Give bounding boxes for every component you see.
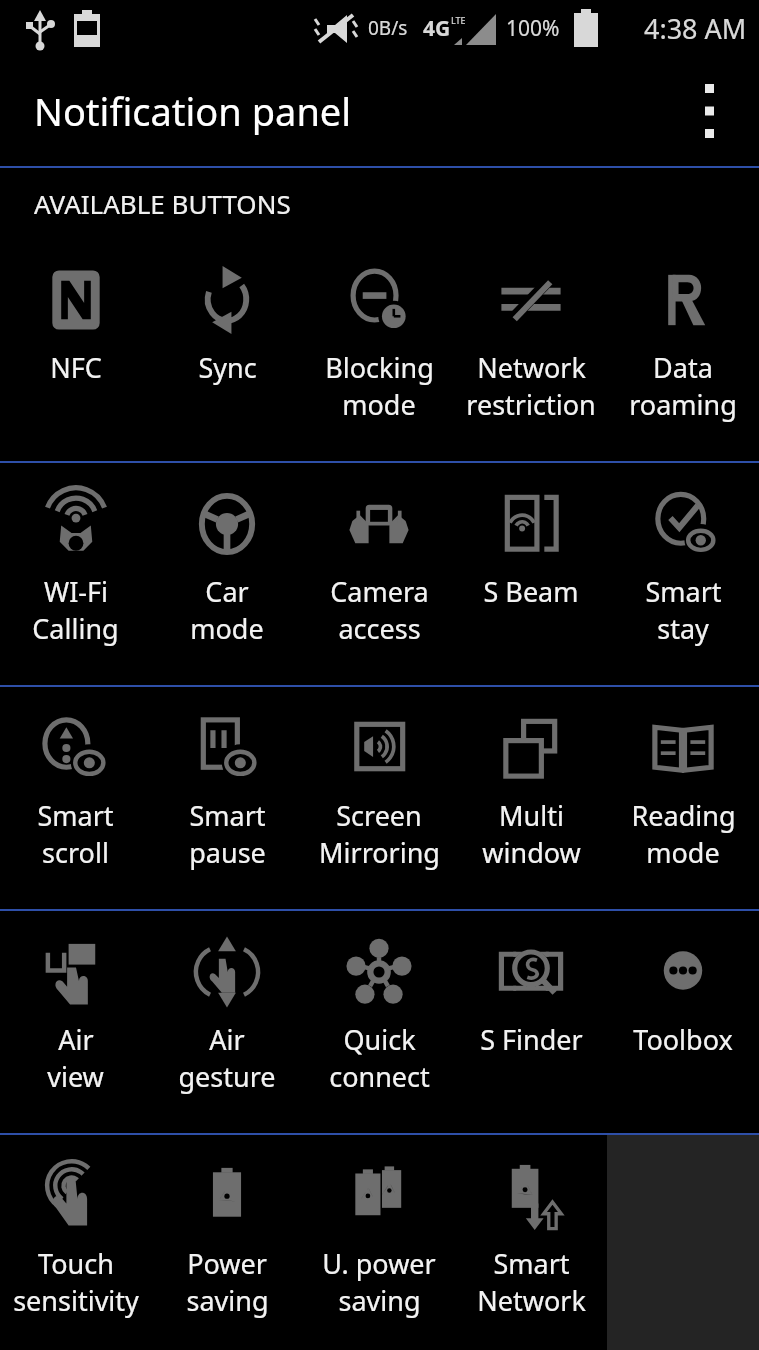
staticText: window bbox=[482, 834, 581, 871]
staticText: Air bbox=[209, 1021, 245, 1058]
staticText: Touch bbox=[38, 1245, 114, 1282]
button[interactable]: Camera bbox=[303, 463, 455, 685]
staticText: Power bbox=[187, 1245, 267, 1282]
staticText: mode bbox=[342, 386, 416, 423]
button[interactable]: Sync bbox=[151, 239, 303, 461]
button[interactable]: Multi bbox=[455, 687, 607, 909]
staticText: scroll bbox=[42, 834, 109, 871]
staticText: mode bbox=[190, 610, 264, 647]
staticText: U. power bbox=[322, 1245, 436, 1282]
button[interactable]: Reading bbox=[607, 687, 759, 909]
button[interactable]: Car bbox=[151, 463, 303, 685]
staticText: 100% bbox=[506, 14, 560, 43]
staticText: Smart bbox=[37, 797, 114, 834]
staticText: Toolbox bbox=[633, 1021, 733, 1058]
staticText: Camera bbox=[330, 573, 429, 610]
button[interactable]: S Finder bbox=[455, 911, 607, 1133]
button[interactable]: More options bbox=[679, 81, 739, 141]
staticText: pause bbox=[189, 834, 266, 871]
staticText: view bbox=[47, 1058, 104, 1095]
staticText: 0B/s bbox=[368, 15, 408, 41]
staticText: 4G bbox=[423, 14, 451, 43]
staticText: Sync bbox=[198, 349, 257, 386]
button[interactable]: Screen bbox=[303, 687, 455, 909]
staticText: Screen bbox=[336, 797, 422, 834]
staticText: S Beam bbox=[483, 573, 579, 610]
staticText: restriction bbox=[466, 386, 596, 423]
button[interactable]: Smart bbox=[607, 463, 759, 685]
button[interactable]: Smart bbox=[455, 1135, 607, 1350]
button[interactable]: Touch bbox=[0, 1135, 151, 1350]
staticText: Quick bbox=[343, 1021, 416, 1058]
staticText: WI-Fi bbox=[44, 573, 108, 610]
button[interactable]: WI-Fi bbox=[0, 463, 151, 685]
staticText: LTE bbox=[451, 14, 466, 26]
staticText: mode bbox=[646, 834, 720, 871]
button[interactable]: Air bbox=[151, 911, 303, 1133]
staticText: Network bbox=[477, 1282, 586, 1319]
staticText: roaming bbox=[629, 386, 737, 423]
staticText: stay bbox=[657, 610, 709, 647]
staticText: Smart bbox=[493, 1245, 570, 1282]
staticText: Notification panel bbox=[34, 85, 352, 137]
staticText: saving bbox=[186, 1282, 269, 1319]
button[interactable]: Power bbox=[151, 1135, 303, 1350]
staticText: Mirroring bbox=[319, 834, 440, 871]
button[interactable]: Smart bbox=[151, 687, 303, 909]
staticText: Calling bbox=[32, 610, 119, 647]
button[interactable]: Data bbox=[607, 239, 759, 461]
staticText: Car bbox=[205, 573, 249, 610]
button[interactable]: Toolbox bbox=[607, 911, 759, 1133]
staticText: access bbox=[338, 610, 421, 647]
button[interactable]: S Beam bbox=[455, 463, 607, 685]
button[interactable]: Network bbox=[455, 239, 607, 461]
staticText: Reading bbox=[631, 797, 736, 834]
staticText: AVAILABLE BUTTONS bbox=[34, 186, 291, 221]
staticText: Smart bbox=[189, 797, 266, 834]
staticText: saving bbox=[338, 1282, 421, 1319]
button[interactable]: Quick bbox=[303, 911, 455, 1133]
staticText: Blocking bbox=[325, 349, 434, 386]
staticText: sensitivity bbox=[13, 1282, 139, 1319]
staticText: gesture bbox=[178, 1058, 276, 1095]
staticText: NFC bbox=[50, 349, 102, 386]
button[interactable]: Air bbox=[0, 911, 151, 1133]
staticText: Network bbox=[477, 349, 586, 386]
staticText: S Finder bbox=[480, 1021, 583, 1058]
staticText: Multi bbox=[499, 797, 564, 834]
button[interactable]: Smart bbox=[0, 687, 151, 909]
button[interactable]: NFC bbox=[0, 239, 151, 461]
button[interactable]: U. power bbox=[303, 1135, 455, 1350]
staticText: connect bbox=[329, 1058, 430, 1095]
staticText: Air bbox=[58, 1021, 94, 1058]
button[interactable]: Blocking bbox=[303, 239, 455, 461]
staticText: Smart bbox=[645, 573, 722, 610]
staticText: Data bbox=[653, 349, 713, 386]
staticText: 4:38 AM bbox=[644, 10, 747, 47]
